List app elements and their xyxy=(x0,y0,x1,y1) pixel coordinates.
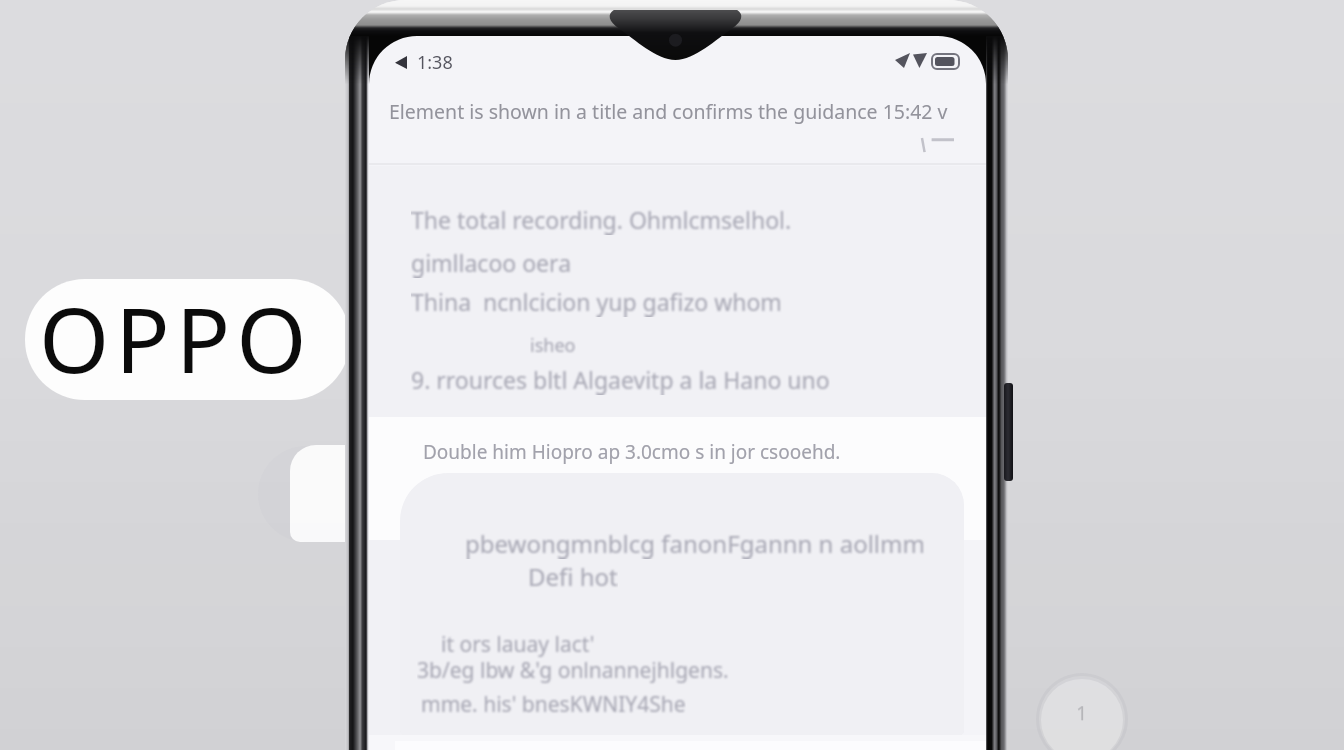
staticText: Double him Hiopro ap 3.0cmo s in jor cso… xyxy=(423,439,841,465)
staticText: 1 xyxy=(1076,700,1088,727)
button[interactable]: Power button xyxy=(1004,383,1013,481)
staticText: it ors lauay lact' xyxy=(441,630,595,659)
staticText: Defi hot xyxy=(528,560,618,592)
staticText: 1:38 xyxy=(417,50,453,75)
staticText: Thina ncnlcicion yup gafizo whom xyxy=(411,286,782,317)
button[interactable] xyxy=(400,473,964,735)
staticText: OPPO xyxy=(39,279,313,398)
staticText: Element is shown in a title and confirms… xyxy=(389,98,948,125)
staticText: isheo xyxy=(530,333,576,358)
staticText: gimllacoo oera xyxy=(411,247,572,278)
staticText: pbewongmnblcg fanonFgannn n aollmm xyxy=(465,527,925,559)
button[interactable]: Back xyxy=(390,50,412,74)
staticText: 9. rrources bltl Algaevitp a la Hano uno xyxy=(411,364,830,395)
staticText: The total recording. Ohmlcmselhol. xyxy=(411,204,792,235)
staticText: 3b/eg lbw &'g onlnannejhlgens. xyxy=(417,656,729,685)
staticText: mme. his' bnesKWNIY4She xyxy=(421,690,686,719)
staticText: 1 xyxy=(1076,699,1088,726)
button[interactable]: More options xyxy=(922,133,956,155)
